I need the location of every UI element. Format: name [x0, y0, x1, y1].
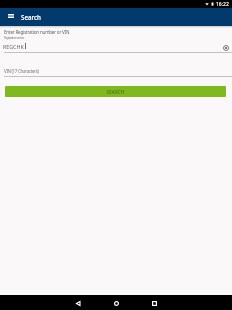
button[interactable]: Recent apps [135, 295, 173, 310]
staticText: Search [21, 13, 41, 21]
button[interactable]: Open navigation menu [3, 8, 19, 24]
staticText: VIN (17 Characters) [4, 68, 39, 74]
staticText: SEARCH [106, 89, 125, 95]
button[interactable]: Clear registration number [219, 41, 232, 54]
button[interactable]: Home [97, 295, 135, 310]
staticText: Enter Registration number or VIN [4, 29, 70, 35]
staticText: Registration number [4, 36, 24, 40]
button[interactable]: SEARCH [5, 86, 226, 97]
button[interactable]: Back [59, 295, 97, 310]
staticText: 16:22 [216, 1, 229, 8]
staticText: REGCHK [3, 43, 24, 50]
